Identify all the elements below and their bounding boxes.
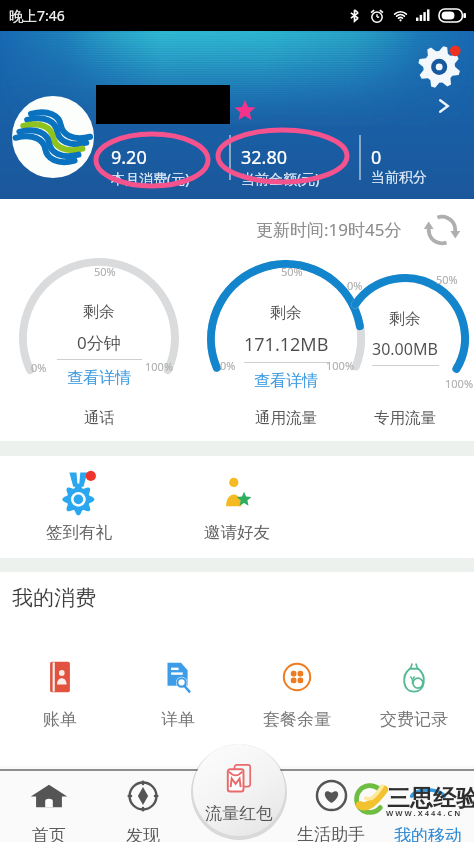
staticText: 100% [326,358,355,373]
button[interactable]: 生活助手 [286,774,376,842]
staticText: 当前积分 [371,169,427,187]
staticText: 本月消费(元) [111,169,190,188]
staticText: 0% [220,358,236,373]
staticText: W W W . X 4 4 4 . C N [386,808,461,818]
staticText: 当前金额(元) [241,169,320,188]
staticText: 首页 [32,825,66,842]
staticText: 50% [281,264,303,279]
staticText: 专用流量 [374,408,436,428]
staticText: 剩余 [389,309,421,329]
button[interactable]: 查看详情 [254,371,318,391]
staticText: 通用流量 [255,408,317,428]
button[interactable]: More [432,94,456,118]
button[interactable]: China Mobile logo [12,96,94,178]
staticText: 100% [145,359,174,374]
button[interactable]: Refresh [423,211,461,249]
staticText: 生活助手 [297,824,365,842]
button[interactable]: 详单 [126,660,230,730]
staticText: 签到有礼 [46,522,112,543]
staticText: 0% [31,360,47,375]
button[interactable]: 流量红包 [193,744,285,836]
staticText: 晚上7:46 [9,6,65,25]
staticText: 邀请好友 [204,522,270,543]
staticText: 发现 [126,825,160,842]
button[interactable]: 我的移动 [383,774,473,842]
staticText: 交费记录 [380,709,448,730]
staticText: 0 [371,145,382,170]
staticText: 9.20 [111,145,147,170]
staticText: 账单 [43,709,77,730]
staticText: 剩余 [83,302,115,322]
staticText: 30.00MB [372,338,438,360]
staticText: 更新时间:19时45分 [256,218,402,241]
staticText: 剩余 [270,303,302,323]
staticText: 套餐余量 [263,709,331,730]
staticText: 详单 [161,709,195,730]
button[interactable]: 发现 [98,774,188,842]
button[interactable]: 查看详情 [67,368,131,388]
button[interactable]: 套餐余量 [245,660,349,730]
button[interactable]: 签到有礼 [29,470,129,543]
staticText: 171.12MB [244,332,329,357]
staticText: 我的移动 [394,825,462,842]
staticText: 0% [347,278,363,293]
staticText: 50% [436,272,458,287]
button[interactable]: 账单 [8,660,112,730]
button[interactable]: 首页 [4,774,94,842]
staticText: 我的消费 [12,585,96,611]
staticText: 0分钟 [77,331,121,354]
button[interactable]: Settings [418,43,464,89]
button[interactable]: 交费记录 [362,660,466,730]
staticText: 50% [94,264,116,279]
staticText: 流量红包 [205,803,273,824]
staticText: 100% [445,376,474,391]
staticText: 32.80 [241,145,288,170]
button[interactable]: 邀请好友 [187,475,287,543]
staticText: 三思经验 [387,784,474,813]
staticText: 通话 [84,408,115,428]
